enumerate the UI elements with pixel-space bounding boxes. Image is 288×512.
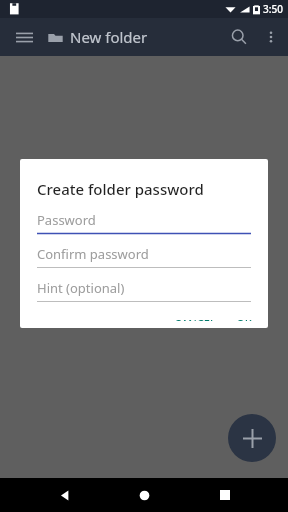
button[interactable]: OK [228, 309, 260, 328]
staticText: OK [236, 316, 252, 321]
button[interactable]: Open navigation drawer [6, 19, 42, 55]
button[interactable]: Recent apps [208, 478, 242, 512]
staticText: Confirm password [37, 245, 149, 263]
button[interactable]: Password [37, 211, 251, 235]
staticText: Create folder password [37, 179, 204, 199]
button[interactable]: Back [47, 478, 81, 512]
button[interactable]: Hint (optional) [37, 279, 251, 303]
staticText: 3:50 [263, 2, 283, 16]
button[interactable]: Search [222, 20, 256, 54]
staticText: New folder [70, 27, 148, 47]
button[interactable]: Add [228, 414, 276, 462]
staticText: Hint (optional) [37, 279, 125, 297]
button[interactable]: Home [127, 478, 161, 512]
button[interactable]: Confirm password [37, 245, 251, 269]
staticText: CANCEL [174, 316, 216, 321]
button[interactable]: CANCEL [166, 309, 224, 328]
staticText: Password [37, 211, 96, 229]
button[interactable]: More options [256, 22, 286, 52]
